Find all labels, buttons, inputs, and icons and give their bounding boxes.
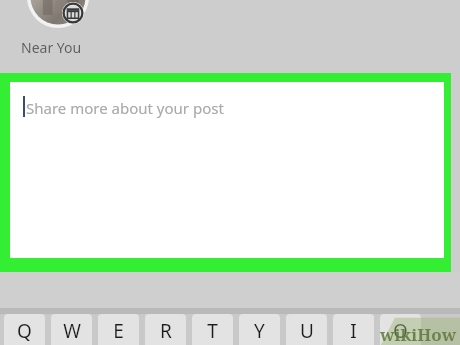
button[interactable]: U xyxy=(286,314,327,345)
staticText: O xyxy=(393,318,408,344)
staticText: T xyxy=(207,318,218,344)
button[interactable]: T xyxy=(192,314,233,345)
staticText: Share more about your post xyxy=(26,98,224,118)
button[interactable]: Near You xyxy=(21,38,82,57)
staticText: U xyxy=(300,318,314,344)
staticText: wikiHow xyxy=(380,323,457,345)
button[interactable]: Share more about your post xyxy=(10,82,444,258)
staticText: Y xyxy=(254,318,265,344)
button[interactable]: Place category xyxy=(62,2,84,24)
staticText: W xyxy=(63,318,81,344)
button[interactable]: I xyxy=(333,314,374,345)
staticText: E xyxy=(113,318,124,344)
button[interactable]: E xyxy=(98,314,139,345)
button[interactable]: Near You place photo xyxy=(27,0,89,28)
staticText: I xyxy=(350,318,357,344)
staticText: Near You xyxy=(21,38,82,57)
staticText: Q xyxy=(17,318,32,344)
button[interactable]: W xyxy=(51,314,92,345)
button[interactable]: Y xyxy=(239,314,280,345)
button[interactable]: Q xyxy=(4,314,45,345)
button[interactable]: O xyxy=(380,314,421,345)
staticText: R xyxy=(160,318,172,344)
button[interactable]: R xyxy=(145,314,186,345)
